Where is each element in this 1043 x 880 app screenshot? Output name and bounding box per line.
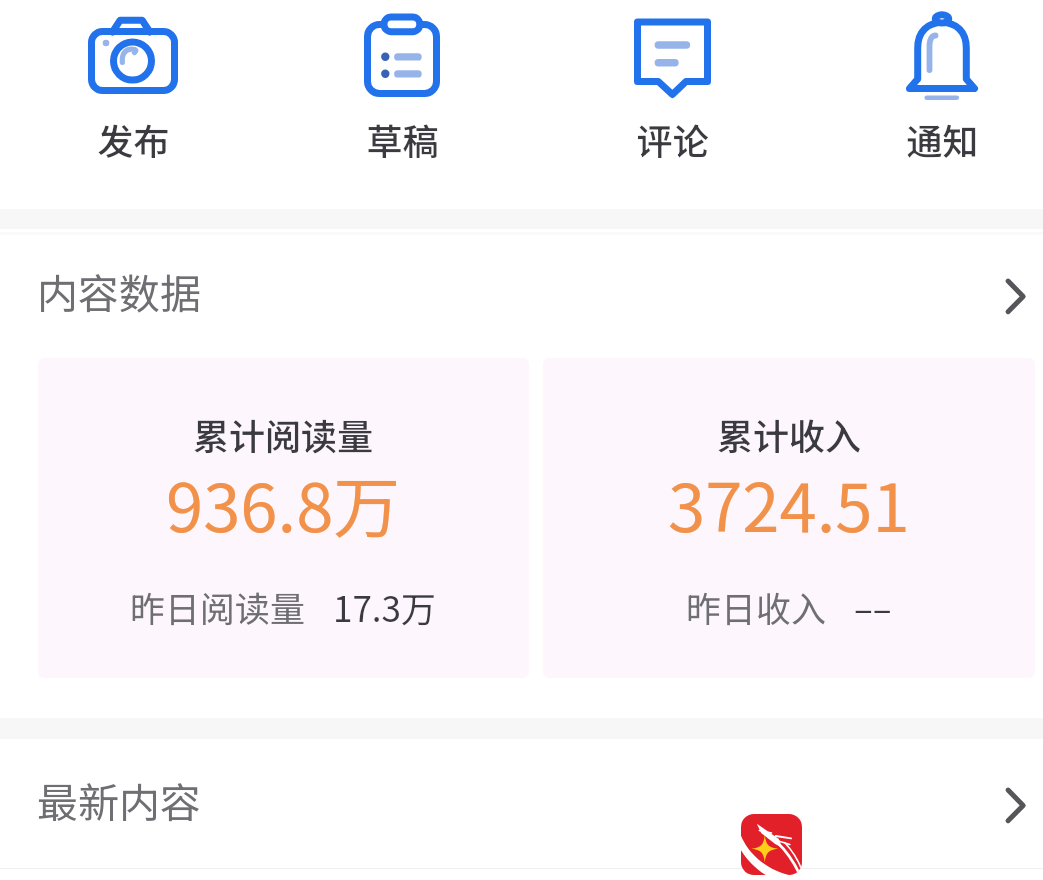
staticText: 累计阅读量 [193, 408, 374, 460]
staticText: 通知 [906, 113, 979, 165]
staticText: 17.3万 [333, 581, 437, 632]
other: More [987, 267, 1039, 319]
button[interactable]: 评论 [572, 0, 772, 185]
staticText: 累计收入 [717, 408, 862, 460]
staticText: 草稿 [366, 113, 439, 165]
staticText: 936.8万 [166, 454, 401, 551]
staticText: 昨日阅读量 [130, 581, 306, 632]
button[interactable]: 草稿 [302, 0, 502, 185]
staticText: 3724.51 [668, 454, 910, 551]
other: 草稿 [364, 14, 440, 97]
staticText: 发布 [97, 113, 170, 165]
button[interactable]: 通知 [842, 0, 1042, 185]
other: More [987, 776, 1039, 828]
button[interactable]: 发布 [33, 0, 233, 185]
button[interactable]: Baijiahao [741, 814, 802, 875]
staticText: –– [854, 581, 892, 632]
staticText: 内容数据 [37, 261, 201, 320]
staticText: 评论 [636, 113, 709, 165]
button[interactable]: 累计收入 [543, 358, 1035, 678]
other: 发布 [88, 16, 178, 96]
other: 通知 [906, 11, 978, 100]
button[interactable]: 累计阅读量 [38, 358, 529, 678]
button[interactable]: 内容数据 [0, 226, 1043, 354]
other: 评论 [634, 18, 711, 98]
button[interactable]: 最新内容 [0, 735, 1043, 863]
staticText: 最新内容 [37, 770, 201, 829]
staticText: 昨日收入 [686, 581, 827, 632]
